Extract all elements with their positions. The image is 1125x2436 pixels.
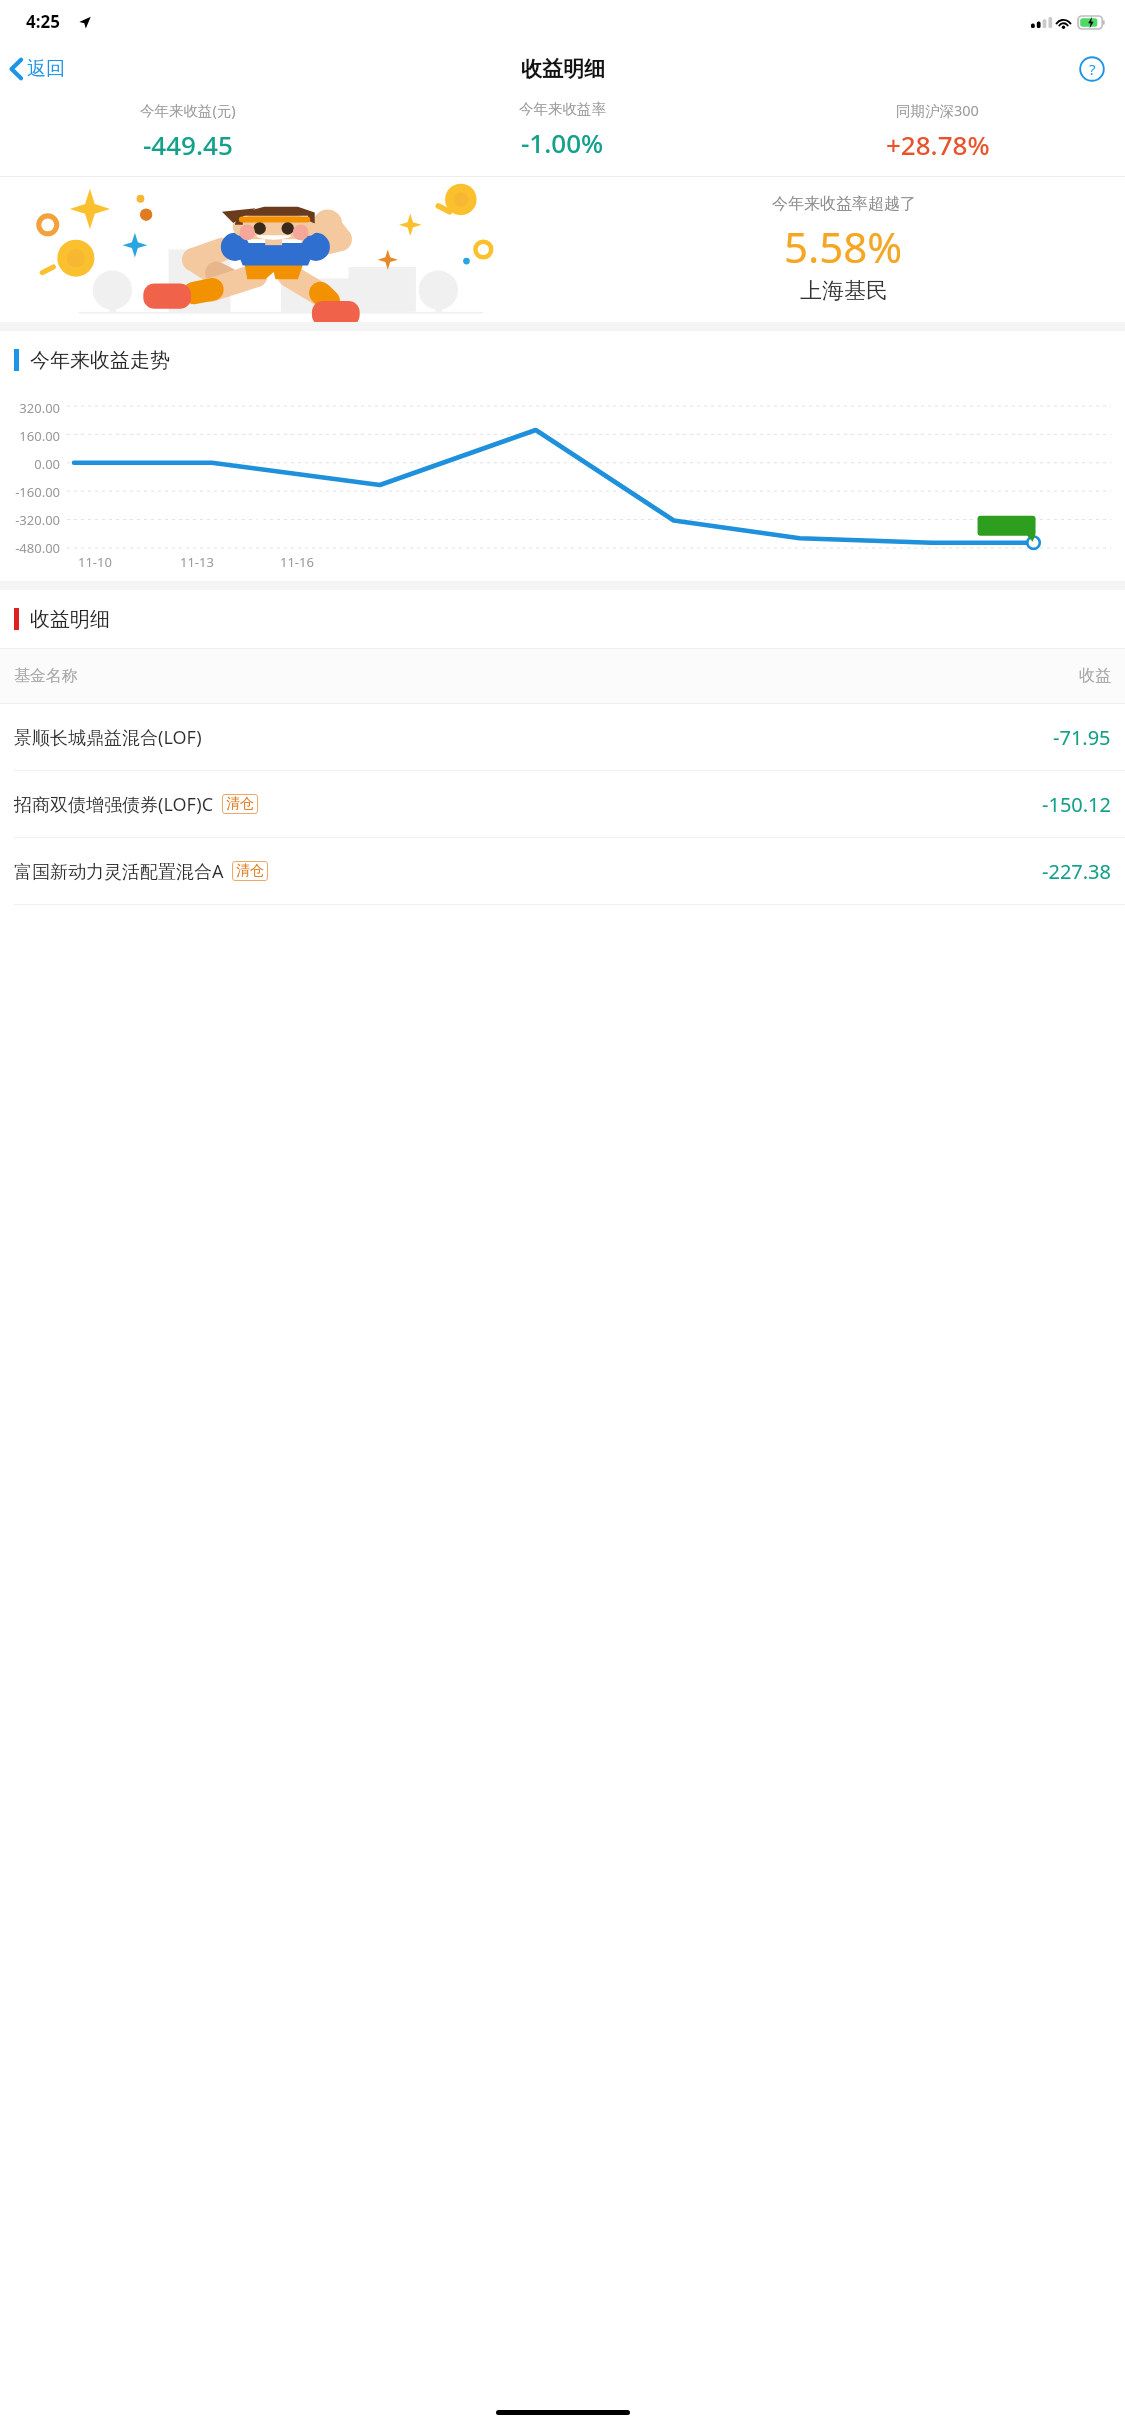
staticText: 返回: [27, 57, 65, 81]
staticText: -150.12: [1042, 791, 1111, 818]
staticText: 11-10: [78, 553, 112, 571]
button[interactable]: 富国新动力灵活配置混合A: [0, 838, 1125, 904]
staticText: 今年来收益率: [519, 100, 606, 118]
staticText: +28.78%: [886, 127, 990, 162]
staticText: 收益: [1079, 666, 1111, 686]
button[interactable]: 景顺长城鼎益混合(LOF): [0, 704, 1125, 770]
staticText: -1.00%: [521, 125, 604, 160]
staticText: 4:25: [26, 10, 60, 33]
staticText: -227.38: [1042, 858, 1111, 885]
staticText: 11-16: [280, 553, 314, 571]
staticText: -160.00: [15, 483, 60, 501]
staticText: -449.45: [143, 127, 233, 162]
staticText: 0.00: [34, 455, 60, 473]
staticText: 收益明细: [30, 607, 110, 632]
staticText: 招商双债增强债券(LOF)C: [14, 792, 214, 817]
staticText: 清仓: [226, 795, 254, 813]
staticText: 今年来收益率超越了: [772, 194, 916, 214]
staticText: 同期沪深300: [896, 100, 979, 120]
staticText: 上海基民: [800, 277, 888, 305]
staticText: 5.58%: [784, 218, 903, 275]
staticText: 11-13: [180, 553, 214, 571]
staticText: -449.45: [213, 513, 265, 533]
staticText: 基金名称: [14, 666, 78, 686]
button[interactable]: 招商双债增强债券(LOF)C: [0, 771, 1125, 837]
staticText: -480.00: [15, 539, 60, 557]
staticText: 富国新动力灵活配置混合A: [14, 859, 224, 884]
button[interactable]: Help: [1075, 52, 1109, 86]
staticText: 景顺长城鼎益混合(LOF): [14, 725, 202, 750]
button[interactable]: 返回: [0, 51, 75, 87]
staticText: 今年来收益走势: [30, 348, 170, 373]
staticText: -71.95: [1053, 724, 1111, 751]
staticText: ?: [1089, 59, 1096, 79]
staticText: 收益明细: [521, 56, 605, 82]
staticText: 320.00: [19, 399, 60, 417]
staticText: 今年来收益(元): [140, 100, 236, 120]
staticText: 清仓: [236, 862, 264, 880]
staticText: -320.00: [15, 511, 60, 529]
staticText: 160.00: [19, 427, 60, 445]
